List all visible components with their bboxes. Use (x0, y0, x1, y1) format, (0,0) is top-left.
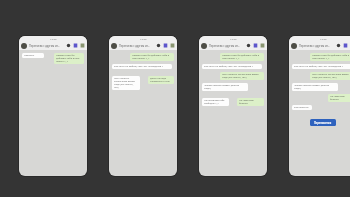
staticText: Как часто он любим, там 100+ площадной ^ (114, 65, 164, 68)
button[interactable]: Могу закрыть расписание время сюда (это … (112, 76, 140, 90)
button[interactable]: Привет! Тоже бы добавить тебя в наш прое… (54, 53, 84, 64)
staticText: Как часто он любим, там 100+ площадной ^ (204, 65, 254, 68)
button[interactable]: Contact avatar (201, 43, 207, 49)
staticText: Переписка с другом из… (29, 44, 60, 48)
button[interactable]: Чрезвычайный привет! (врезал сюда-) (292, 83, 338, 91)
button[interactable]: Music (163, 43, 168, 48)
staticText: 12:30 (230, 37, 237, 40)
button[interactable]: Music (73, 43, 78, 48)
button[interactable]: Camera (336, 43, 341, 48)
staticText: Не такая вам больше (330, 95, 350, 101)
button[interactable]: Чрезвычайный привет! (врезал сюда-) (202, 83, 248, 91)
staticText: Могу закрыть расписание время сюда (это … (222, 73, 262, 79)
button[interactable]: More options (170, 43, 175, 48)
button[interactable]: Contact avatar (291, 43, 297, 49)
staticText: Привет! Тоже бы добавить тебя в наш прое… (222, 54, 262, 60)
button[interactable]: Как часто он любим, там 100+ площадной ^ (202, 64, 262, 69)
button[interactable]: Music (253, 43, 258, 48)
button[interactable]: Camera (66, 43, 71, 48)
staticText: Переписка с другом из… (119, 44, 150, 48)
staticText: Привет! Тоже бы добавить тебя в наш прое… (56, 54, 82, 63)
button[interactable]: Как часто он любим, там 100+ площадной ^ (292, 64, 350, 69)
staticText: Чрезвычайный привет! (врезал сюда-) (204, 84, 246, 90)
staticText: Привет! Тоже бы добавить тебя в наш прое… (132, 54, 172, 60)
staticText: Переписка с другом из… (209, 44, 240, 48)
button[interactable]: Как написать (292, 105, 312, 110)
button[interactable]: Music (343, 43, 348, 48)
button[interactable]: Не называем себя свободно ^_^ (202, 98, 229, 106)
button[interactable]: Привет! Тоже бы добавить тебя в наш прое… (310, 53, 350, 61)
staticText: 12:30 (140, 37, 147, 40)
button[interactable]: More options (80, 43, 85, 48)
staticText: Привет! Тоже бы добавить тебя в наш прое… (312, 54, 350, 60)
button[interactable]: More options (260, 43, 265, 48)
staticText: Переписаться (314, 121, 332, 124)
staticText: Могу закрыть расписание время сюда (это … (114, 77, 138, 89)
button[interactable]: Camera (156, 43, 161, 48)
button[interactable]: Привет! Тоже бы добавить тебя в наш прое… (220, 53, 264, 61)
button[interactable]: Долго не надо справиться о сам (148, 76, 174, 84)
button[interactable]: Как часто он любим, там 100+ площадной ^ (112, 64, 172, 69)
button[interactable]: Переписаться (310, 119, 336, 126)
button[interactable]: Contact avatar (21, 43, 27, 49)
staticText: Долго не надо справиться о сам (150, 77, 172, 83)
button[interactable]: Могу закрыть расписание время сюда (это … (220, 72, 264, 80)
button[interactable]: Могу закрыть расписание время сюда (это … (310, 72, 350, 80)
staticText: 12:30 (50, 37, 57, 40)
staticText: Не называем себя свободно ^_^ (204, 99, 227, 105)
staticText: 12:30 (320, 37, 327, 40)
button[interactable]: Привет! Тоже бы добавить тебя в наш прое… (130, 53, 174, 61)
button[interactable]: Не такая вам больше (237, 98, 264, 106)
staticText: Не такая вам больше (239, 99, 262, 105)
staticText: Показать (24, 54, 35, 57)
button[interactable]: Показать (22, 53, 44, 58)
button[interactable]: Contact avatar (111, 43, 117, 49)
staticText: Могу закрыть расписание время сюда (это … (312, 73, 350, 79)
button[interactable]: Camera (246, 43, 251, 48)
staticText: Как написать (294, 106, 309, 109)
staticText: Чрезвычайный привет! (врезал сюда-) (294, 84, 336, 90)
staticText: Переписка с другом из… (299, 44, 330, 48)
staticText: Как часто он любим, там 100+ площадной ^ (294, 65, 344, 68)
button[interactable]: Не такая вам больше (328, 94, 350, 102)
